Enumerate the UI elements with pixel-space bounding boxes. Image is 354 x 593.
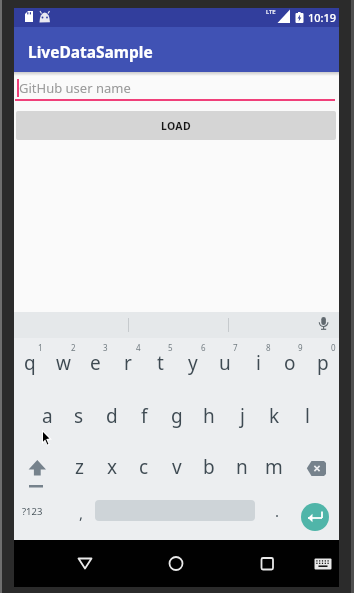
staticText: a bbox=[42, 403, 53, 429]
staticText: 5 bbox=[168, 342, 173, 353]
staticText: LiveDataSample bbox=[28, 41, 153, 62]
staticText: b bbox=[203, 454, 215, 480]
staticText: 4 bbox=[136, 342, 141, 353]
staticText: GitHub user name bbox=[19, 79, 131, 97]
staticText: LOAD bbox=[161, 119, 191, 133]
button[interactable]: h bbox=[169, 402, 249, 430]
staticText: c bbox=[139, 454, 149, 480]
button[interactable]: y bbox=[153, 349, 233, 377]
staticText: 9 bbox=[298, 342, 303, 353]
staticText: 0 bbox=[331, 342, 336, 353]
button[interactable]: t bbox=[120, 349, 200, 377]
button[interactable]: d bbox=[72, 402, 152, 430]
button[interactable]: LOAD bbox=[16, 111, 336, 140]
staticText: q bbox=[24, 350, 36, 376]
staticText: j bbox=[240, 403, 245, 429]
button[interactable] bbox=[252, 549, 282, 577]
button[interactable] bbox=[21, 452, 55, 484]
staticText: h bbox=[203, 403, 215, 429]
button[interactable]: i bbox=[218, 349, 298, 377]
button[interactable]: k bbox=[234, 402, 314, 430]
staticText: u bbox=[219, 350, 231, 376]
button[interactable]: r bbox=[88, 349, 168, 377]
staticText: d bbox=[106, 403, 118, 429]
button[interactable]: b bbox=[169, 453, 249, 481]
staticText: 8 bbox=[266, 342, 271, 353]
staticText: w bbox=[56, 350, 71, 376]
button[interactable]: ?123 bbox=[0, 497, 72, 525]
staticText: o bbox=[284, 350, 296, 376]
button[interactable] bbox=[161, 549, 191, 577]
staticText: p bbox=[317, 350, 329, 376]
staticText: 10:19 bbox=[308, 10, 337, 25]
button[interactable]: . bbox=[237, 497, 317, 525]
staticText: v bbox=[172, 454, 182, 480]
button[interactable] bbox=[15, 72, 336, 101]
staticText: 3 bbox=[103, 342, 108, 353]
staticText: l bbox=[305, 403, 310, 429]
staticText: ?123 bbox=[22, 505, 43, 518]
staticText: r bbox=[124, 350, 132, 376]
staticText: n bbox=[236, 454, 248, 480]
staticText: z bbox=[75, 454, 84, 480]
button[interactable]: s bbox=[39, 402, 119, 430]
button[interactable] bbox=[70, 549, 100, 577]
staticText: g bbox=[171, 403, 183, 429]
button[interactable] bbox=[301, 503, 329, 531]
button[interactable]: j bbox=[202, 402, 282, 430]
button[interactable]: u bbox=[185, 349, 265, 377]
button[interactable]: z bbox=[39, 453, 119, 481]
button[interactable]: n bbox=[202, 453, 282, 481]
button[interactable]: a bbox=[7, 402, 87, 430]
staticText: 7 bbox=[233, 342, 238, 353]
button[interactable]: g bbox=[137, 402, 217, 430]
button[interactable]: w bbox=[23, 349, 103, 377]
staticText: LTE bbox=[266, 8, 276, 16]
button[interactable]: x bbox=[72, 453, 152, 481]
button[interactable] bbox=[14, 312, 339, 338]
button[interactable]: , bbox=[41, 499, 121, 527]
staticText: , bbox=[79, 503, 84, 523]
button[interactable]: o bbox=[250, 349, 330, 377]
button[interactable]: v bbox=[137, 453, 217, 481]
staticText: 1 bbox=[38, 342, 43, 353]
staticText: e bbox=[90, 350, 101, 376]
button[interactable]: l bbox=[267, 402, 347, 430]
button[interactable] bbox=[310, 554, 336, 574]
button[interactable]: e bbox=[55, 349, 135, 377]
staticText: . bbox=[275, 501, 280, 521]
button[interactable]: q bbox=[0, 349, 70, 377]
button[interactable]: m bbox=[234, 453, 314, 481]
button[interactable]: c bbox=[104, 453, 184, 481]
button[interactable]: f bbox=[104, 402, 184, 430]
staticText: x bbox=[107, 454, 118, 480]
button[interactable]: p bbox=[283, 349, 354, 377]
button[interactable] bbox=[299, 452, 333, 484]
staticText: t bbox=[157, 350, 164, 376]
staticText: k bbox=[269, 403, 280, 429]
staticText: 2 bbox=[71, 342, 76, 353]
staticText: y bbox=[188, 350, 198, 376]
staticText: s bbox=[74, 403, 84, 429]
staticText: 6 bbox=[201, 342, 206, 353]
staticText: m bbox=[265, 454, 283, 480]
staticText: f bbox=[141, 403, 148, 429]
staticText: i bbox=[256, 350, 261, 376]
